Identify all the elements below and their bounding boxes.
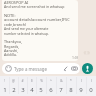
staticText: 3 [21,86,25,94]
staticText: % [40,79,43,83]
button[interactable]: ! [0,76,9,96]
staticText: 4 [30,86,34,94]
staticText: NOTE: [4,13,16,18]
staticText: Addillu. [4,52,18,57]
other: Attach [62,65,69,72]
staticText: @ [12,79,15,83]
staticText: 1:06 pm [72,55,78,60]
staticText: 0 [89,86,93,94]
staticText: ! [4,79,5,83]
staticText: ) [91,79,92,83]
staticText: 6 [49,86,53,94]
staticText: & [60,79,63,83]
staticText: Aarushi, [4,48,19,53]
button[interactable]: # [18,76,27,96]
button[interactable]: Voice message [82,63,93,74]
button[interactable]: Emoji [2,63,80,74]
staticText: 5 [39,86,43,94]
button[interactable]: & [56,76,66,96]
button[interactable]: ( [76,76,86,96]
staticText: Thankyou, [4,39,23,44]
staticText: 8 [69,86,73,94]
staticText: AEROSPOP AI [4,0,29,5]
button[interactable]: $ [27,76,36,96]
staticText: And send me your alternate [4,26,49,31]
other: Emoji [5,65,12,72]
staticText: ( [81,79,82,83]
staticText: ^ [50,79,52,83]
staticText: * [70,79,72,83]
button[interactable]: AEROSPOP AI [2,0,78,61]
button[interactable]: % [36,76,46,96]
button[interactable]: ^ [46,76,56,96]
staticText: And send me screenshot in whatsup [4,4,65,9]
button[interactable]: @ [9,76,18,96]
staticText: 9 [79,86,83,94]
staticText: 1 [3,86,7,94]
staticText: Type a message [14,66,47,72]
staticText: 7 [59,86,63,94]
staticText: Regards, [4,44,20,49]
staticText: 2 [12,86,16,94]
button[interactable]: ) [86,76,96,96]
staticText: number selected in whatsup. [4,31,49,35]
staticText: code,branch) [4,22,26,27]
button[interactable]: * [66,76,76,96]
other: Camera [71,65,78,72]
staticText: # [21,79,24,83]
staticText: account details(account number,IFSC [4,17,70,22]
staticText: $ [31,79,33,83]
